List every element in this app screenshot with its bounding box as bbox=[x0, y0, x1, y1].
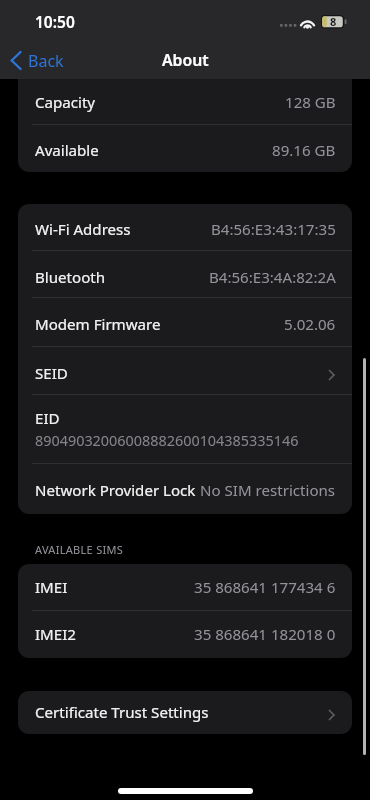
button[interactable]: SEID bbox=[18, 347, 352, 395]
staticText: Certificate Trust Settings bbox=[35, 702, 209, 723]
staticText: Wi-Fi Address bbox=[35, 219, 131, 240]
staticText: 5.02.06 bbox=[284, 314, 336, 335]
staticText: 89.16 GB bbox=[272, 140, 336, 161]
staticText: 8 bbox=[330, 14, 337, 29]
button[interactable]: Capacity bbox=[18, 78, 352, 125]
button[interactable]: IMEI2 bbox=[18, 611, 352, 658]
staticText: IMEI2 bbox=[35, 624, 76, 645]
staticText: Network Provider Lock bbox=[35, 480, 196, 501]
button[interactable]: EID bbox=[18, 395, 352, 464]
button[interactable]: Network Provider Lock bbox=[18, 464, 352, 514]
staticText: Modem Firmware bbox=[35, 314, 161, 335]
staticText: B4:56:E3:4A:82:2A bbox=[209, 267, 336, 288]
staticText: Bluetooth bbox=[35, 267, 106, 288]
staticText: Capacity bbox=[35, 92, 96, 113]
button[interactable]: Certificate Trust Settings bbox=[18, 691, 352, 734]
staticText: Back bbox=[28, 50, 64, 72]
button[interactable]: Bluetooth bbox=[18, 251, 352, 298]
button[interactable]: Modem Firmware bbox=[18, 298, 352, 347]
button[interactable]: IMEI bbox=[18, 564, 352, 611]
staticText: Available bbox=[35, 140, 99, 161]
staticText: SEID bbox=[35, 363, 68, 384]
staticText: AVAILABLE SIMS bbox=[35, 542, 124, 557]
staticText: 89049032006008882600104385335146 bbox=[35, 431, 299, 451]
staticText: EID bbox=[35, 408, 60, 429]
staticText: B4:56:E3:43:17:35 bbox=[211, 219, 336, 240]
button[interactable]: Wi-Fi Address bbox=[18, 204, 352, 251]
staticText: 10:50 bbox=[35, 11, 75, 32]
staticText: No SIM restrictions bbox=[200, 480, 336, 501]
staticText: IMEI bbox=[35, 577, 68, 598]
button[interactable]: Back bbox=[10, 44, 64, 79]
staticText: 35 868641 177434 6 bbox=[194, 577, 336, 598]
staticText: 128 GB bbox=[285, 92, 336, 113]
staticText: 35 868641 182018 0 bbox=[194, 624, 336, 645]
button[interactable]: Available bbox=[18, 125, 352, 172]
staticText: About bbox=[162, 49, 209, 71]
